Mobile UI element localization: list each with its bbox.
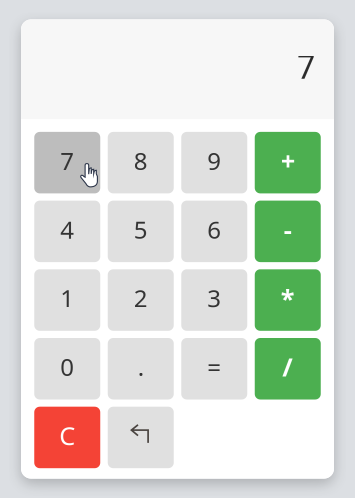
button[interactable]: *: [255, 269, 321, 331]
staticText: 0: [60, 351, 74, 383]
button[interactable]: Undo: [108, 407, 174, 468]
button[interactable]: 7: [34, 132, 100, 193]
button[interactable]: /: [255, 338, 321, 399]
staticText: 1: [60, 282, 74, 314]
staticText: 7: [297, 45, 315, 88]
staticText: /: [282, 350, 293, 383]
staticText: *: [281, 281, 295, 315]
button[interactable]: =: [181, 338, 247, 399]
button[interactable]: -: [255, 201, 321, 262]
button[interactable]: +: [255, 132, 321, 193]
button[interactable]: 0: [34, 338, 100, 399]
staticText: 7: [60, 145, 74, 177]
staticText: 4: [60, 213, 74, 245]
staticText: 3: [207, 282, 221, 314]
staticText: 5: [134, 213, 148, 245]
button[interactable]: 1: [34, 269, 100, 331]
staticText: 2: [134, 282, 148, 314]
staticText: 9: [207, 145, 221, 177]
button[interactable]: 6: [181, 201, 247, 262]
staticText: 8: [134, 145, 148, 177]
button[interactable]: 4: [34, 201, 100, 262]
staticText: 6: [207, 213, 221, 245]
staticText: .: [138, 351, 144, 383]
button[interactable]: 5: [108, 201, 174, 262]
button[interactable]: 8: [108, 132, 174, 193]
button[interactable]: 2: [108, 269, 174, 331]
button[interactable]: .: [108, 338, 174, 399]
button[interactable]: 3: [181, 269, 247, 331]
staticText: -: [284, 212, 292, 246]
staticText: +: [281, 144, 295, 177]
button[interactable]: 9: [181, 132, 247, 193]
staticText: =: [207, 351, 221, 383]
button[interactable]: C: [34, 407, 100, 468]
staticText: C: [59, 419, 75, 452]
